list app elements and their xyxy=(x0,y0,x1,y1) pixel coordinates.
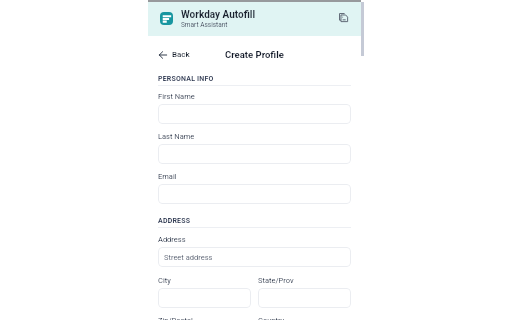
button[interactable]: Street address xyxy=(158,247,351,267)
staticText: PERSONAL INFO xyxy=(158,75,214,83)
button[interactable] xyxy=(158,288,251,308)
staticText: Zip/Postal xyxy=(158,316,193,320)
staticText: Back xyxy=(172,50,190,59)
staticText: Last Name xyxy=(158,132,195,141)
button[interactable]: Documents xyxy=(336,11,352,27)
staticText: City xyxy=(158,276,171,285)
staticText: Email xyxy=(158,172,177,181)
staticText: Country xyxy=(258,316,285,320)
staticText: ADDRESS xyxy=(158,217,191,225)
staticText: State/Prov xyxy=(258,276,294,285)
button[interactable]: Back xyxy=(159,50,190,59)
button[interactable] xyxy=(158,144,351,164)
button[interactable] xyxy=(258,288,351,308)
staticText: Address xyxy=(158,235,186,244)
staticText: Smart Assistant xyxy=(181,21,228,29)
button[interactable] xyxy=(158,184,351,204)
staticText: First Name xyxy=(158,92,195,101)
staticText: Workday Autofill xyxy=(181,9,256,21)
button[interactable] xyxy=(158,104,351,124)
staticText: Create Profile xyxy=(225,49,284,60)
staticText: Street address xyxy=(164,253,213,262)
